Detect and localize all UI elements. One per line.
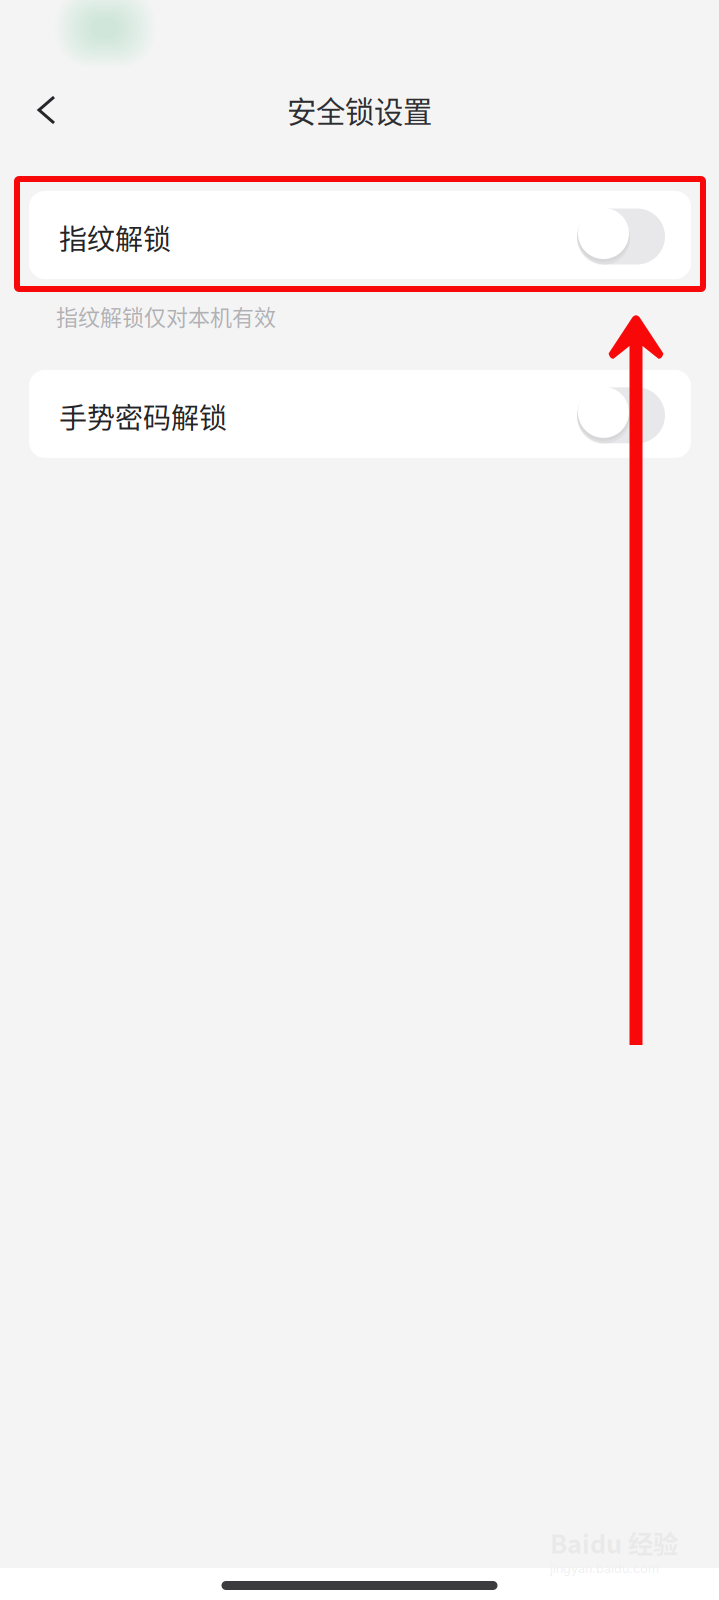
button[interactable]: Back xyxy=(0,83,74,137)
staticText: 安全锁设置 xyxy=(287,89,432,131)
staticText: 指纹解锁 xyxy=(59,217,171,258)
button[interactable]: 指纹解锁 xyxy=(29,191,691,279)
staticText: jingyan.baidu.com xyxy=(550,1561,659,1576)
staticText: 手势密码解锁 xyxy=(59,396,227,437)
button[interactable]: 手势密码解锁 xyxy=(29,370,691,458)
staticText: 指纹解锁仅对本机有效 xyxy=(56,300,276,332)
staticText: Baidu 经验 xyxy=(550,1524,678,1561)
